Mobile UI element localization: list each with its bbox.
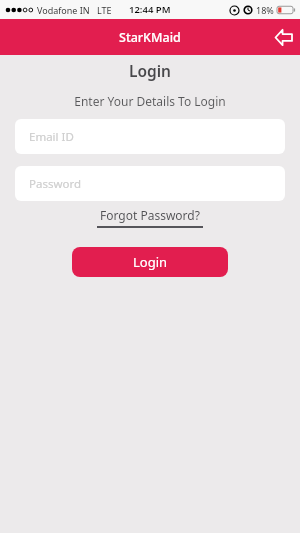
- button[interactable]: Password: [15, 166, 285, 201]
- staticText: Enter Your Details To Login: [0, 93, 300, 109]
- button[interactable]: [273, 26, 295, 48]
- button[interactable]: Email ID: [15, 119, 285, 154]
- staticText: Forgot Password?: [100, 207, 200, 223]
- staticText: StarKMaid: [119, 29, 181, 46]
- staticText: Password: [29, 176, 82, 192]
- button[interactable]: Forgot Password?: [97, 207, 203, 228]
- staticText: Login: [0, 60, 300, 81]
- staticText: LTE: [97, 4, 112, 16]
- button[interactable]: Login: [72, 247, 228, 277]
- staticText: Login: [133, 253, 168, 271]
- staticText: Email ID: [29, 129, 74, 145]
- staticText: 12:44 PM: [129, 3, 171, 16]
- staticText: Vodafone IN: [37, 4, 90, 16]
- staticText: 18%: [256, 4, 274, 16]
